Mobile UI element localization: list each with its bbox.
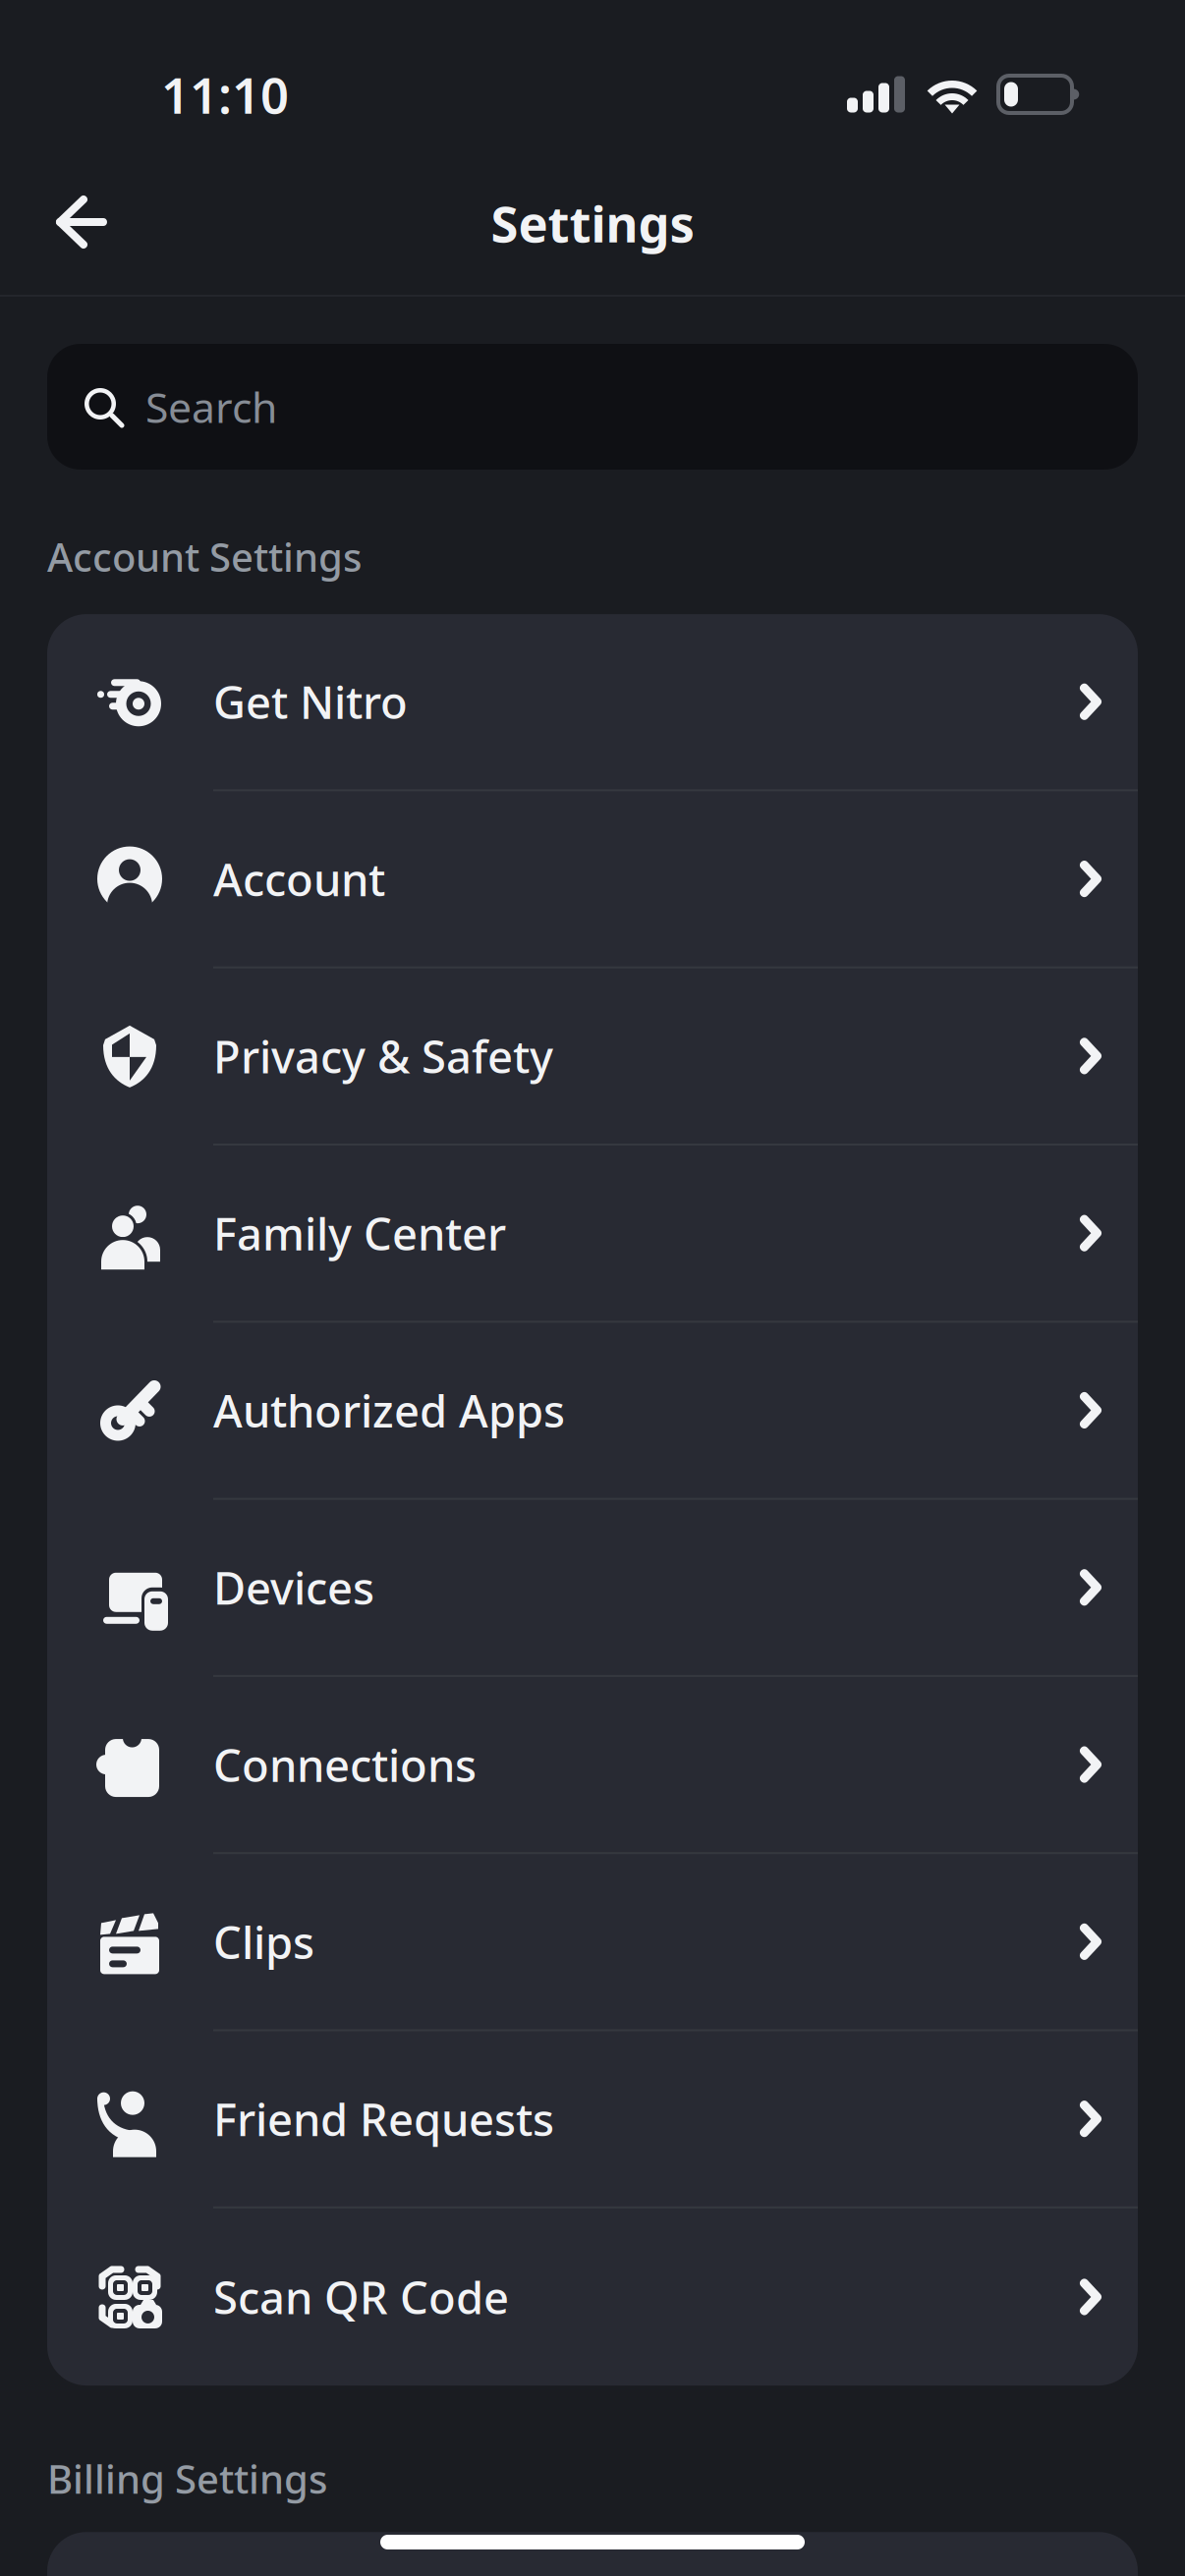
staticText: Get Nitro <box>213 672 408 731</box>
staticText: Clips <box>213 1912 314 1971</box>
button[interactable]: Authorized Apps <box>47 1323 1138 1500</box>
staticText: 11:10 <box>161 61 289 127</box>
button[interactable]: Privacy & Safety <box>47 968 1138 1146</box>
staticText: Settings <box>491 190 694 256</box>
staticText: Devices <box>213 1558 374 1617</box>
button[interactable]: Devices <box>47 1500 1138 1677</box>
button[interactable]: Search <box>0 297 1185 470</box>
staticText: Authorized Apps <box>213 1381 565 1440</box>
staticText: Connections <box>213 1735 477 1794</box>
button[interactable]: Back <box>0 169 132 277</box>
button[interactable]: Connections <box>47 1677 1138 1854</box>
button[interactable]: Scan QR Code <box>47 2208 1138 2386</box>
staticText: Scan QR Code <box>213 2267 509 2327</box>
staticText: Billing Settings <box>47 2452 327 2504</box>
button[interactable]: Account <box>47 791 1138 968</box>
button[interactable]: Friend Requests <box>47 2031 1138 2208</box>
staticText: Friend Requests <box>213 2089 554 2148</box>
button[interactable]: Family Center <box>47 1146 1138 1323</box>
staticText: Account <box>213 849 385 908</box>
button[interactable]: Clips <box>47 1854 1138 2031</box>
staticText: Search <box>145 379 277 435</box>
staticText: Account Settings <box>47 531 362 583</box>
button[interactable]: Get Nitro <box>47 614 1138 791</box>
staticText: Family Center <box>213 1204 506 1263</box>
staticText: Privacy & Safety <box>213 1026 553 1086</box>
